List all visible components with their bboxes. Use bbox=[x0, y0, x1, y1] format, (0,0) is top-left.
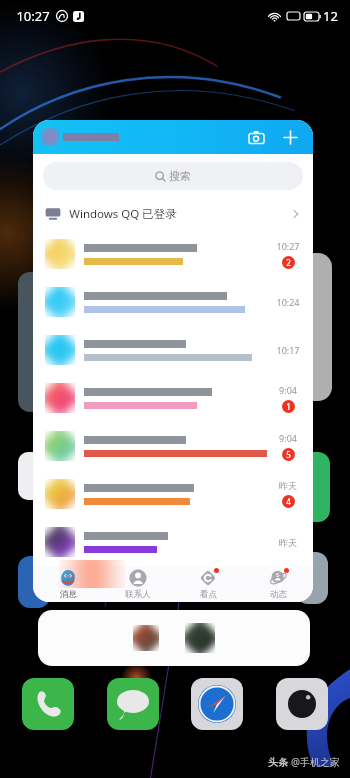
staticText: 5 bbox=[286, 449, 291, 460]
staticText: 10:27 bbox=[16, 7, 50, 25]
button[interactable]: 看点 bbox=[173, 566, 243, 602]
button[interactable]: 10:17 bbox=[33, 326, 313, 374]
staticText: 10:17 bbox=[276, 344, 300, 356]
staticText: 10:27 bbox=[276, 240, 300, 252]
staticText: Windows QQ 已登录 bbox=[69, 206, 177, 222]
staticText: 联系人 bbox=[125, 589, 151, 600]
button[interactable]: Camera bbox=[243, 124, 269, 150]
staticText: 4 bbox=[286, 496, 291, 507]
button[interactable]: 9:04 bbox=[33, 422, 313, 470]
button[interactable]: Messages bbox=[107, 678, 159, 730]
staticText: 搜索 bbox=[169, 169, 191, 183]
button[interactable]: 昨天 bbox=[33, 518, 313, 566]
staticText: 2 bbox=[286, 257, 291, 268]
button[interactable] bbox=[38, 610, 310, 666]
button[interactable]: 昨天 bbox=[33, 470, 313, 518]
staticText: 动态 bbox=[270, 589, 287, 600]
button[interactable]: Add bbox=[277, 124, 303, 150]
button[interactable]: 联系人 bbox=[103, 566, 173, 602]
staticText: 12 bbox=[323, 7, 338, 25]
button[interactable]: 动态 bbox=[243, 566, 313, 602]
button[interactable]: Safari bbox=[191, 678, 243, 730]
staticText: 10:24 bbox=[276, 296, 300, 308]
button[interactable]: 搜索 bbox=[43, 162, 303, 190]
staticText: 9:04 bbox=[279, 384, 297, 396]
staticText: 看点 bbox=[200, 589, 217, 600]
button[interactable]: 9:04 bbox=[33, 374, 313, 422]
button[interactable]: Windows QQ 已登录 bbox=[33, 198, 313, 230]
button[interactable]: Phone bbox=[22, 678, 74, 730]
staticText: @手机之家 bbox=[291, 755, 340, 769]
staticText: 昨天 bbox=[279, 480, 297, 491]
button[interactable]: 10:24 bbox=[33, 278, 313, 326]
button[interactable]: 10:27 bbox=[33, 230, 313, 278]
staticText: 1 bbox=[286, 401, 291, 412]
staticText: 9:04 bbox=[279, 432, 297, 444]
staticText: 消息 bbox=[60, 589, 77, 600]
button[interactable]: 消息 bbox=[33, 566, 103, 602]
button[interactable]: Camera bbox=[276, 678, 328, 730]
staticText: 头条 bbox=[268, 756, 288, 769]
staticText: 昨天 bbox=[279, 537, 297, 548]
